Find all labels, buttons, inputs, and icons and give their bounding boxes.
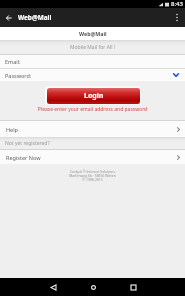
button[interactable]: More options xyxy=(169,8,185,27)
staticText: Web@Mail xyxy=(79,30,107,37)
button[interactable]: Password: xyxy=(0,69,185,81)
button[interactable]: Home xyxy=(83,278,103,296)
staticText: Cockpit © Internet Solutions Marlenweg 6… xyxy=(0,169,185,182)
button[interactable]: Recent apps xyxy=(123,278,143,296)
button[interactable]: Back xyxy=(0,8,18,27)
staticText: Email: xyxy=(5,58,21,65)
staticText: Mobile Mail for All ! xyxy=(70,44,116,51)
staticText: Not yet registered? xyxy=(5,140,50,147)
button[interactable]: Help xyxy=(0,121,185,137)
staticText: Register Now xyxy=(6,154,41,161)
button[interactable]: Login xyxy=(45,86,141,105)
staticText: Password: xyxy=(5,72,32,79)
staticText: 8:43 xyxy=(171,0,183,8)
staticText: Login xyxy=(84,91,104,101)
staticText: Please enter your email address and pass… xyxy=(0,106,185,113)
button[interactable]: Back xyxy=(43,278,63,296)
staticText: Web@Mail xyxy=(18,13,52,22)
button[interactable]: Register Now xyxy=(0,150,185,164)
staticText: Help xyxy=(6,126,18,133)
button[interactable]: Email: xyxy=(0,55,185,68)
